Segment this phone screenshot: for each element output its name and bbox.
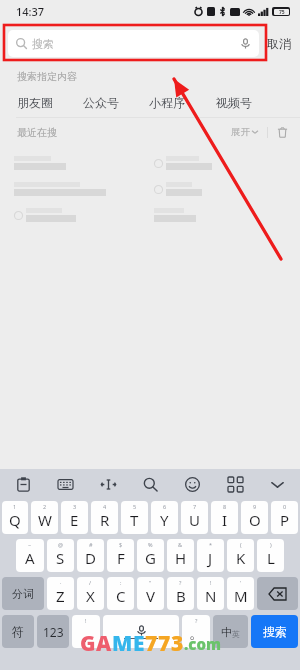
button[interactable]: 小程序 xyxy=(149,95,216,110)
staticText: 123 xyxy=(43,624,64,640)
button[interactable]: 视频号 xyxy=(216,95,283,110)
button[interactable]: 8 xyxy=(211,501,238,534)
button[interactable]: Space / voice input xyxy=(103,615,179,648)
button[interactable]: $ xyxy=(107,539,134,572)
button[interactable]: 7 xyxy=(181,501,208,534)
staticText: 。 xyxy=(189,624,204,643)
staticText: 7 xyxy=(158,629,171,658)
button[interactable]: ! xyxy=(197,577,224,610)
button[interactable]: Hide keyboard xyxy=(264,471,290,497)
staticText: 14:37 xyxy=(16,4,45,19)
staticText: Y xyxy=(160,510,169,530)
button[interactable]: Clipboard xyxy=(10,471,36,497)
staticText: 3 xyxy=(73,503,77,510)
staticText: 0 xyxy=(283,503,287,510)
button[interactable]: More xyxy=(222,471,248,497)
button[interactable]: / xyxy=(77,577,104,610)
button[interactable]: 0 xyxy=(271,501,298,534)
staticText: U xyxy=(189,510,200,530)
button[interactable]: 中 xyxy=(213,615,248,648)
button[interactable]: 展开 xyxy=(231,126,258,138)
button[interactable]: # xyxy=(77,539,104,572)
staticText: 7 xyxy=(193,503,197,510)
button[interactable]: 搜索 xyxy=(251,615,298,648)
staticText: V xyxy=(146,586,156,606)
staticText: B xyxy=(176,586,186,606)
staticText: * xyxy=(209,541,213,548)
button[interactable]: 分词 xyxy=(2,577,44,610)
button[interactable]: ! xyxy=(72,615,100,648)
button[interactable]: 2 xyxy=(31,501,58,534)
button[interactable]: 5 xyxy=(121,501,148,534)
button[interactable]: & xyxy=(167,539,194,572)
button[interactable]: ~ xyxy=(16,539,44,572)
button[interactable]: 123 xyxy=(37,615,69,648)
staticText: 4 xyxy=(103,503,107,510)
staticText: 搜索 xyxy=(32,37,54,51)
staticText: 符 xyxy=(12,624,24,639)
staticText: ) xyxy=(270,541,272,548)
staticText: 7 xyxy=(145,629,158,658)
staticText: / xyxy=(89,579,92,586)
staticText: G xyxy=(145,548,156,568)
staticText: ( xyxy=(240,541,242,548)
staticText: 6 xyxy=(163,503,167,510)
staticText: P xyxy=(280,510,290,530)
staticText: W xyxy=(38,510,52,530)
staticText: M xyxy=(112,629,133,658)
button[interactable]: 1 xyxy=(2,501,28,534)
button[interactable]: 公众号 xyxy=(83,95,149,110)
staticText: · xyxy=(60,579,62,586)
staticText: % xyxy=(148,541,153,548)
button[interactable]: 3 xyxy=(61,501,88,534)
button[interactable]: ( xyxy=(227,539,254,572)
staticText: Z xyxy=(56,586,65,606)
staticText: E xyxy=(133,629,145,658)
other: Voice search xyxy=(240,38,251,49)
staticText: C xyxy=(116,586,126,606)
staticText: 5 xyxy=(133,503,137,510)
button[interactable]: 取消 xyxy=(264,32,294,55)
button[interactable]: Clear history xyxy=(277,127,288,138)
button[interactable]: Cursor control xyxy=(95,471,121,497)
staticText: G xyxy=(80,629,96,658)
button[interactable]: " xyxy=(137,577,164,610)
button[interactable]: @ xyxy=(47,539,74,572)
staticText: D xyxy=(85,548,96,568)
button[interactable]: 4 xyxy=(91,501,118,534)
staticText: ! xyxy=(85,617,87,624)
button[interactable]: ? xyxy=(167,577,194,610)
staticText: ! xyxy=(210,579,212,586)
button[interactable]: Emoji xyxy=(179,471,205,497)
staticText: A xyxy=(96,629,112,658)
staticText: 75 xyxy=(279,9,285,15)
button[interactable]: Backspace xyxy=(257,577,298,610)
button[interactable]: Keyboard layout xyxy=(52,471,78,497)
staticText: # xyxy=(89,541,93,548)
button[interactable]: % xyxy=(137,539,164,572)
button[interactable]: 9 xyxy=(241,501,268,534)
button[interactable]: : xyxy=(107,577,134,610)
button[interactable]: ? xyxy=(182,615,210,648)
staticText: S xyxy=(56,548,65,568)
button[interactable]: 6 xyxy=(151,501,178,534)
staticText: 英 xyxy=(232,629,240,639)
button[interactable]: ' xyxy=(227,577,254,610)
staticText: 3 xyxy=(171,629,184,658)
button[interactable]: 符 xyxy=(2,615,34,648)
button[interactable]: * xyxy=(197,539,224,572)
staticText: N xyxy=(205,586,217,606)
staticText: 1 xyxy=(13,503,17,510)
button[interactable]: 朋友圈 xyxy=(17,95,83,110)
staticText: ~ xyxy=(28,541,32,548)
staticText: R xyxy=(100,510,110,530)
button[interactable]: Search xyxy=(137,471,163,497)
staticText: T xyxy=(130,510,139,530)
staticText: 小程序 xyxy=(149,95,185,110)
button[interactable]: ) xyxy=(257,539,284,572)
staticText: L xyxy=(267,548,275,568)
staticText: 8 xyxy=(223,503,227,510)
button[interactable]: 搜索 xyxy=(8,30,259,57)
button[interactable]: · xyxy=(47,577,74,610)
staticText: : xyxy=(120,579,122,586)
